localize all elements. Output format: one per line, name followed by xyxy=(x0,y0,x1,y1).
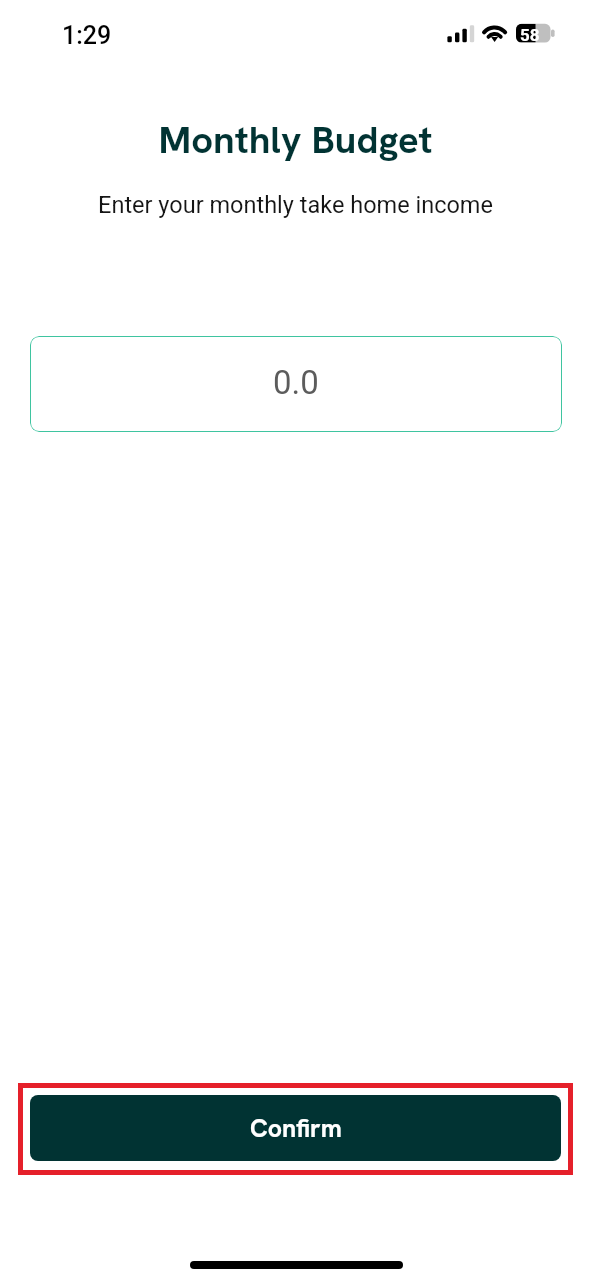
button[interactable]: Confirm xyxy=(30,1095,561,1161)
staticText: 1:29 xyxy=(62,21,112,50)
staticText: 0.0 xyxy=(273,363,319,402)
staticText: Confirm xyxy=(250,1112,342,1145)
staticText: Enter your monthly take home income xyxy=(0,191,591,219)
button[interactable]: 0.0 xyxy=(30,336,562,432)
staticText: 58 xyxy=(520,25,540,45)
staticText: Monthly Budget xyxy=(0,115,591,165)
